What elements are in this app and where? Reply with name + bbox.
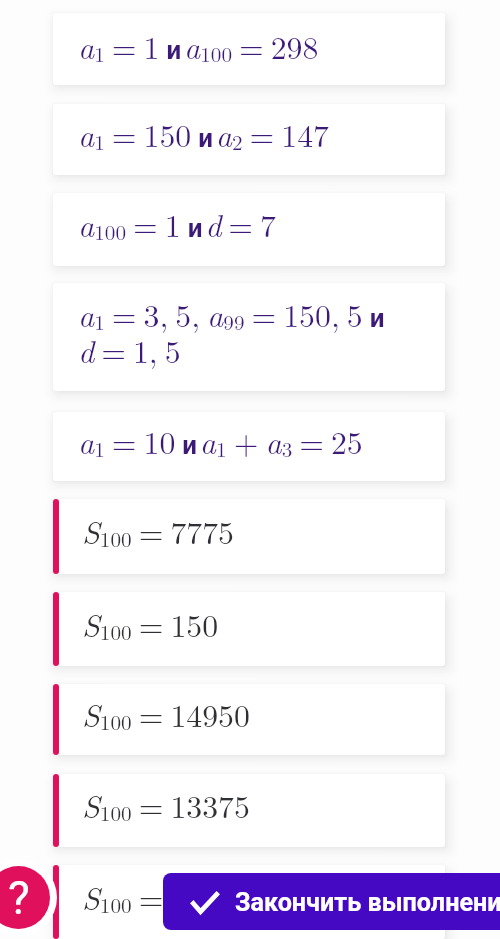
button[interactable]: Закончить выполнение xyxy=(163,873,500,930)
button[interactable]: Help xyxy=(0,866,50,929)
button[interactable]: a1 = 10 и a1 + a3 = 25 xyxy=(53,412,445,481)
staticText: a1 = 3, 5, a99 = 150, 5 и xyxy=(78,291,385,336)
staticText: S100 = 13375 xyxy=(82,782,250,827)
staticText: d = 1, 5 xyxy=(78,327,181,372)
button[interactable]: a1 = 1 и a100 = 298 xyxy=(53,13,445,85)
button[interactable]: S100 = 5050 xyxy=(53,865,445,939)
button[interactable]: S100 = 13375 xyxy=(53,774,445,847)
button[interactable]: S100 = 7775 xyxy=(53,499,445,574)
staticText: Закончить выполнение xyxy=(235,888,500,918)
staticText: S100 = 7775 xyxy=(82,508,234,553)
button[interactable]: a1 = 3, 5, a99 = 150, 5 и xyxy=(53,283,445,391)
staticText: a1 = 10 и a1 + a3 = 25 xyxy=(78,418,363,463)
staticText: a100 = 1 и d = 7 xyxy=(78,201,277,246)
staticText: a1 = 150 и a2 = 147 xyxy=(78,111,329,156)
staticText: S100 = 5050 xyxy=(82,874,234,919)
staticText: S100 = 150 xyxy=(82,601,219,646)
staticText: ? xyxy=(8,871,30,925)
staticText: S100 = 14950 xyxy=(82,691,250,736)
button[interactable]: S100 = 14950 xyxy=(53,684,445,755)
staticText: a1 = 1 и a100 = 298 xyxy=(78,23,319,68)
button[interactable]: a1 = 150 и a2 = 147 xyxy=(53,104,445,175)
button[interactable]: a100 = 1 и d = 7 xyxy=(53,193,445,266)
button[interactable]: S100 = 150 xyxy=(53,592,445,666)
